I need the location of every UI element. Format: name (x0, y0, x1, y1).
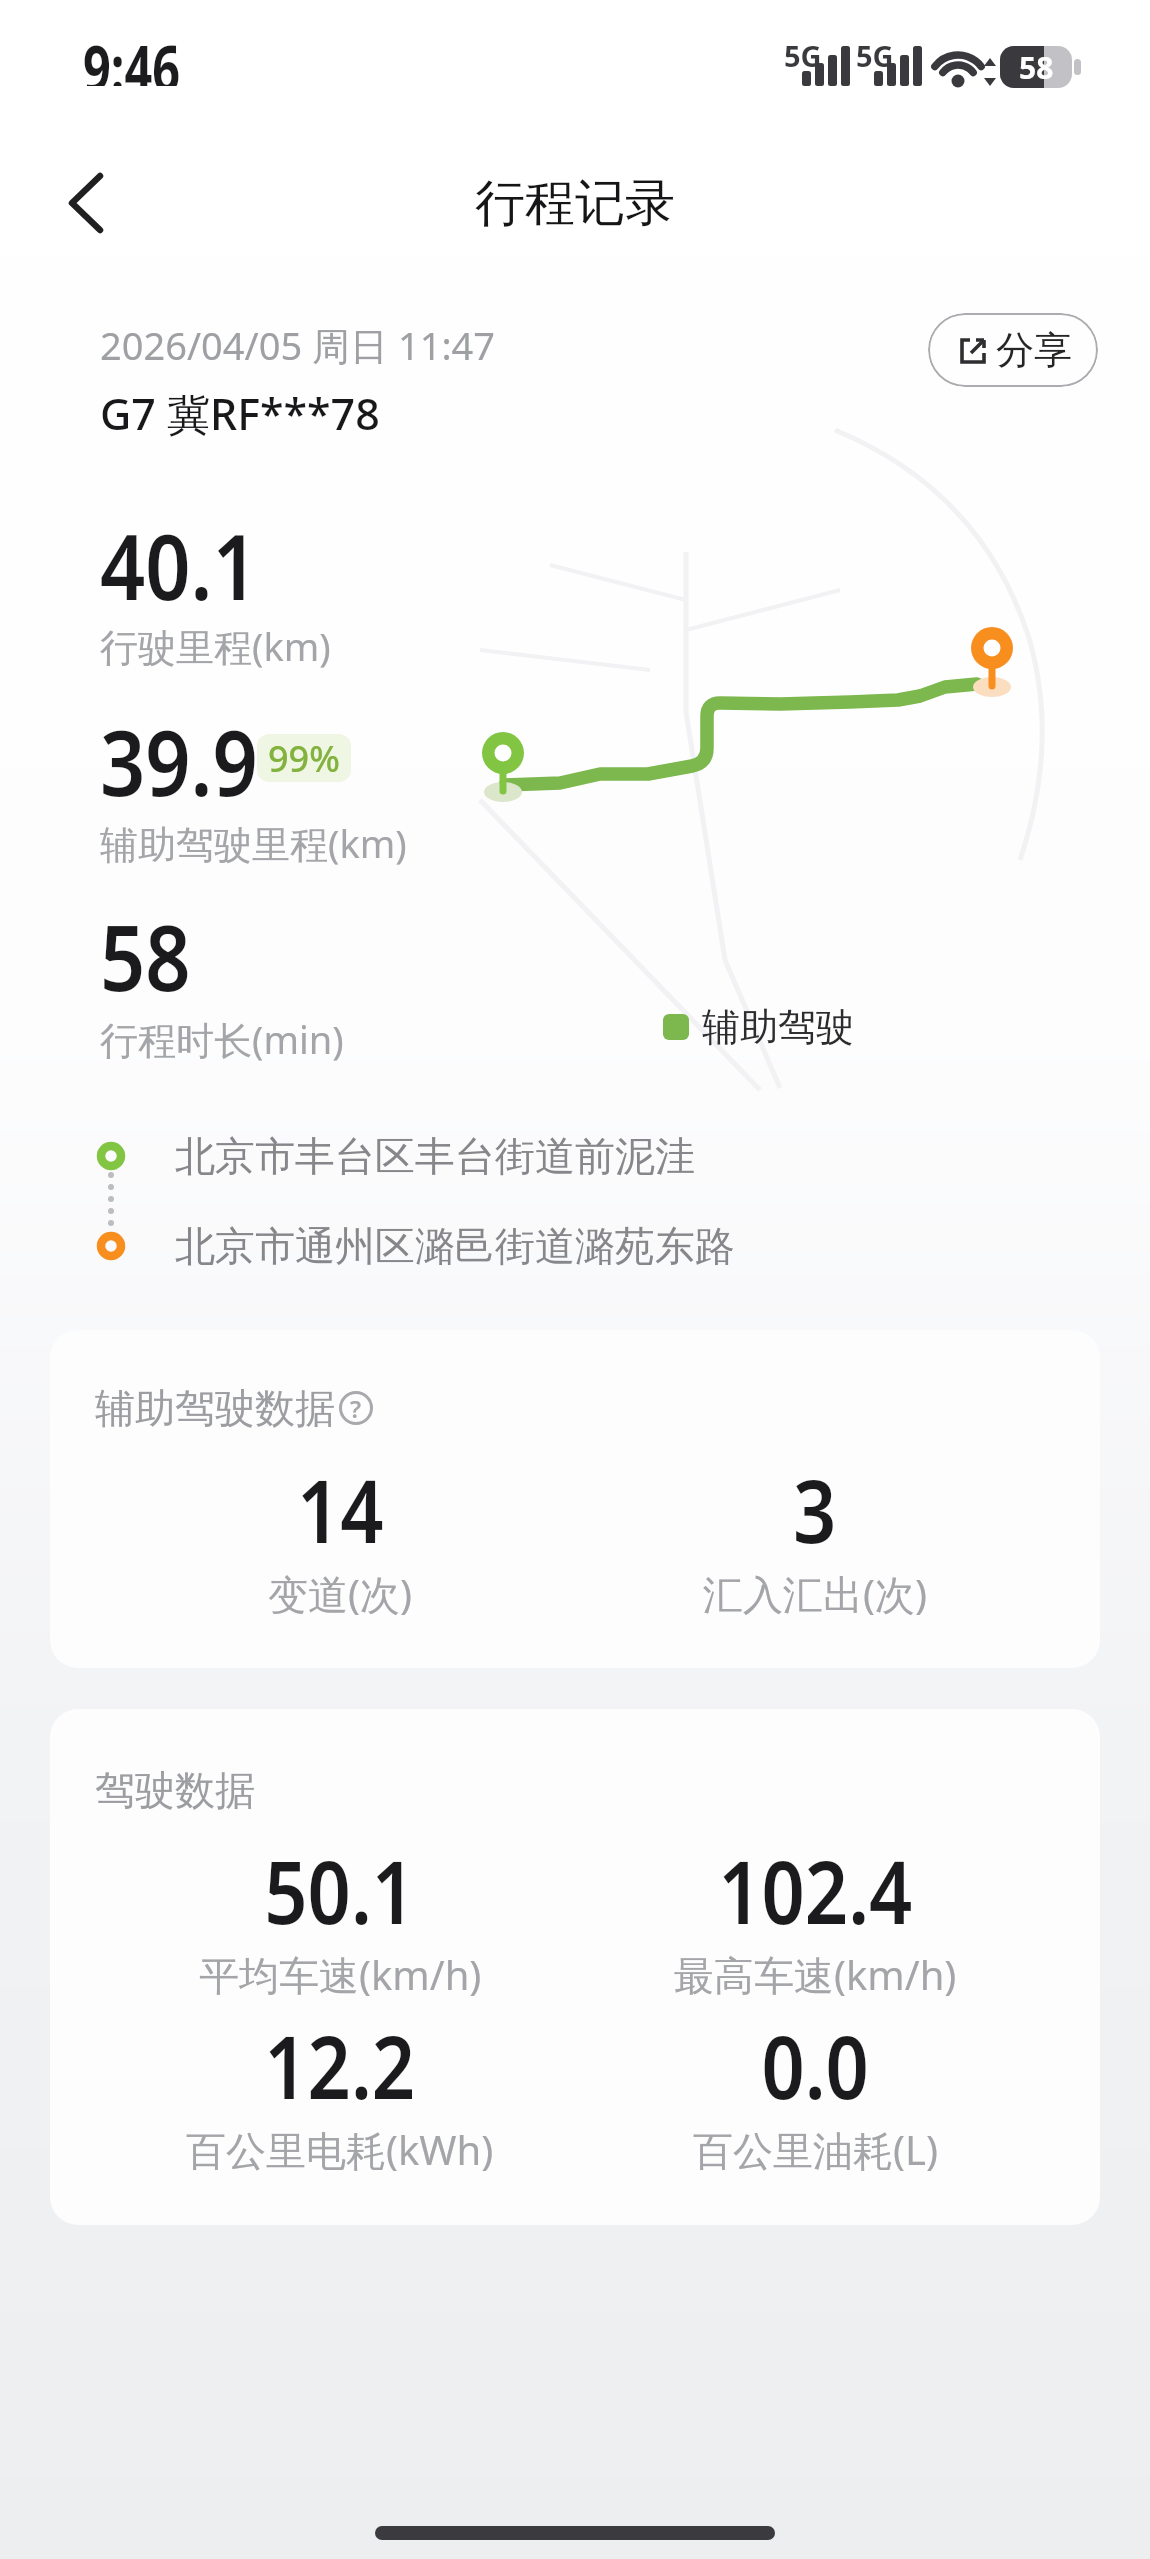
staticText: 40.1 (100, 504, 258, 604)
staticText: 102.4 (718, 1832, 913, 1932)
staticText: ? (350, 1392, 362, 1425)
staticText: 最高车速(km/h) (674, 1947, 957, 1999)
staticText: 分享 (996, 326, 1072, 374)
staticText: 5G (856, 36, 894, 70)
staticText: 变道(次) (268, 1566, 412, 1618)
button[interactable]: 分享 (928, 313, 1098, 387)
staticText: 辅助驾驶里程(km) (100, 817, 407, 865)
staticText: 50.1 (264, 1832, 416, 1932)
staticText: G7 冀RF***78 (100, 384, 380, 442)
button[interactable] (60, 168, 130, 238)
staticText: 行程记录 (475, 172, 675, 235)
staticText: 0.0 (761, 2007, 870, 2107)
staticText: 58 (1019, 47, 1054, 88)
staticText: 9:46 (83, 24, 180, 86)
staticText: 58 (100, 895, 191, 995)
staticText: 99% (268, 734, 340, 782)
staticText: 2026/04/05 周日 11:47 (100, 319, 496, 371)
staticText: 百公里油耗(L) (693, 2122, 938, 2174)
staticText: 12.2 (264, 2007, 416, 2107)
staticText: 行驶里程(km) (100, 620, 331, 668)
staticText: 北京市丰台区丰台街道前泥洼 (175, 1131, 695, 1181)
staticText: 3 (793, 1451, 837, 1551)
staticText: 百公里电耗(kWh) (186, 2122, 494, 2174)
button[interactable]: ? (339, 1391, 373, 1425)
staticText: 汇入汇出(次) (703, 1566, 927, 1618)
staticText: 5G (784, 36, 822, 70)
staticText: 辅助驾驶数据 (95, 1383, 335, 1433)
staticText: 辅助驾驶 (702, 1003, 854, 1051)
staticText: 39.9 (100, 700, 258, 800)
staticText: 驾驶数据 (95, 1765, 255, 1815)
staticText: 平均车速(km/h) (199, 1947, 482, 1999)
staticText: 北京市通州区潞邑街道潞苑东路 (175, 1221, 735, 1271)
staticText: 行程时长(min) (100, 1013, 344, 1061)
staticText: 14 (297, 1451, 384, 1551)
